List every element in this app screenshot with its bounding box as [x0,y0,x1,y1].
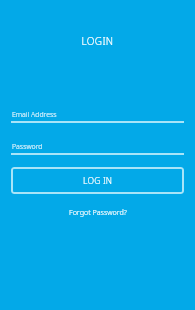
staticText: LOGIN [0,34,195,48]
button[interactable]: Forgot Password? [61,205,135,219]
staticText: Email Address [12,110,57,120]
staticText: Password [12,142,43,152]
button[interactable]: Email Address [11,105,184,123]
button[interactable]: Password [11,137,184,155]
button[interactable]: LOG IN [11,167,184,194]
staticText: LOG IN [83,175,113,187]
